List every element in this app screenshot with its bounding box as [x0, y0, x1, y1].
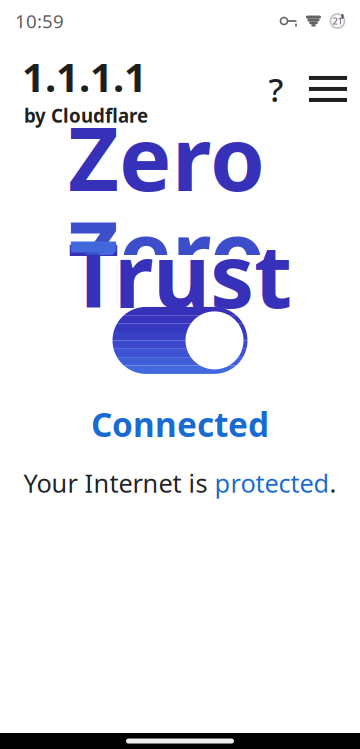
- staticText: 1.1.1.1: [22, 50, 147, 103]
- staticText: by Cloudflare: [24, 103, 148, 128]
- staticText: Zero Trust: [68, 193, 292, 427]
- staticText: 21: [332, 15, 342, 27]
- staticText: Connected: [91, 402, 269, 446]
- staticText: Zero Trust: [68, 212, 292, 446]
- staticText: ?: [268, 67, 283, 111]
- staticText: .: [329, 466, 336, 500]
- button[interactable]: Help: [254, 67, 298, 111]
- staticText: Your Internet is: [23, 466, 214, 500]
- button[interactable]: Disconnect VPN: [112, 307, 247, 374]
- staticText: protected: [214, 466, 329, 500]
- staticText: Zero Trust: [68, 98, 292, 332]
- staticText: 10:59: [15, 9, 64, 33]
- button[interactable]: protected: [214, 466, 329, 500]
- button[interactable]: Menu: [306, 67, 350, 111]
